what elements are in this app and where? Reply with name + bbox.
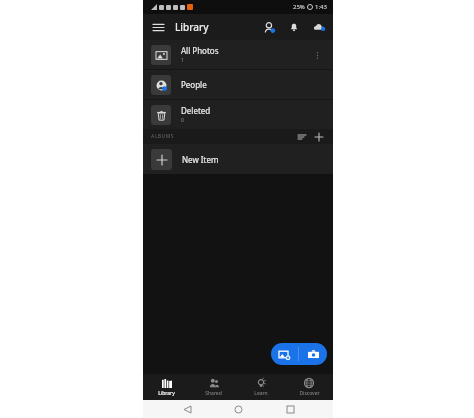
button[interactable]: Camera (299, 343, 327, 365)
button[interactable]: More options (309, 47, 325, 63)
staticText: New Item (182, 154, 219, 165)
button[interactable]: Cloud sync (311, 19, 327, 35)
button[interactable]: Add photos (271, 343, 298, 365)
button[interactable]: Discover (285, 374, 333, 400)
button[interactable]: New Item (143, 144, 333, 174)
button[interactable]: Account (261, 19, 277, 35)
button[interactable]: Add album (312, 130, 325, 143)
staticText: Discover (299, 390, 320, 397)
staticText: Deleted (181, 105, 211, 116)
staticText: 1 (181, 57, 184, 64)
staticText: Library (175, 20, 209, 34)
button[interactable]: Menu (149, 18, 167, 36)
staticText: Learn (254, 390, 268, 397)
button[interactable]: Back (179, 401, 195, 417)
button[interactable]: Recents (282, 401, 298, 417)
staticText: 25% (293, 3, 305, 11)
staticText: 0 (181, 117, 184, 124)
staticText: All Photos (181, 45, 219, 56)
button[interactable]: Notifications (286, 19, 302, 35)
button[interactable]: Deleted (143, 100, 333, 129)
button[interactable]: Library (143, 374, 190, 400)
button[interactable]: Sort (295, 130, 308, 143)
button[interactable]: All Photos (143, 40, 333, 69)
button[interactable]: Home (230, 401, 246, 417)
staticText: People (181, 79, 207, 90)
button[interactable]: Shared (190, 374, 237, 400)
staticText: 1:43 (315, 3, 327, 11)
staticText: Shared (205, 390, 222, 397)
staticText: Library (158, 390, 175, 397)
staticText: ALBUMS (151, 133, 175, 140)
button[interactable]: Learn (237, 374, 285, 400)
button[interactable]: People (143, 70, 333, 99)
